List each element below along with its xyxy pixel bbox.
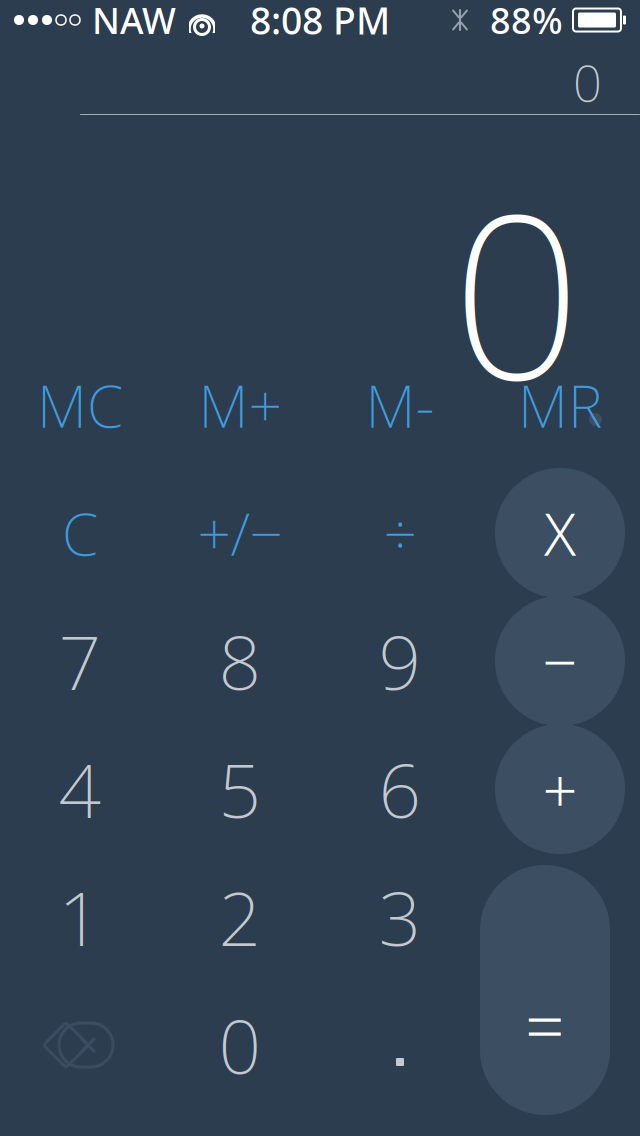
staticText: 6 <box>378 739 421 839</box>
button[interactable]: 2 <box>160 853 320 981</box>
staticText: 2 <box>218 867 261 967</box>
staticText: − <box>542 620 577 702</box>
button[interactable]: Minus <box>480 597 640 725</box>
staticText: 8 <box>218 611 261 711</box>
button[interactable]: MC <box>0 341 160 469</box>
staticText: ÷ <box>383 494 416 572</box>
staticText: = <box>525 979 565 1071</box>
button[interactable]: Decimal point <box>320 981 480 1109</box>
staticText: 5 <box>218 739 261 839</box>
button[interactable]: 0 <box>160 981 320 1109</box>
button[interactable]: 7 <box>0 597 160 725</box>
staticText: 3 <box>378 867 421 967</box>
staticText: C <box>62 494 98 572</box>
staticText: MR <box>518 366 602 444</box>
button[interactable]: MR <box>480 341 640 469</box>
button[interactable]: 6 <box>320 725 480 853</box>
staticText: 0 <box>218 995 261 1095</box>
staticText: +/− <box>197 494 282 572</box>
button[interactable]: 1 <box>0 853 160 981</box>
button[interactable]: 8 <box>160 597 320 725</box>
staticText: M- <box>365 366 434 444</box>
button[interactable]: 4 <box>0 725 160 853</box>
staticText: MC <box>37 366 123 444</box>
button[interactable]: Equals <box>480 865 610 1115</box>
staticText: 7 <box>58 611 101 711</box>
staticText: 8:08 PM <box>250 0 390 45</box>
button[interactable]: Multiply <box>480 469 640 597</box>
staticText: 0 <box>452 141 581 442</box>
button[interactable]: Backspace <box>0 981 160 1109</box>
button[interactable]: M- <box>320 341 480 469</box>
staticText: 9 <box>378 611 421 711</box>
button[interactable]: 9 <box>320 597 480 725</box>
staticText: + <box>542 748 577 830</box>
button[interactable]: Plus <box>480 725 640 853</box>
staticText: 88% <box>490 0 563 44</box>
button[interactable]: +/− <box>160 469 320 597</box>
button[interactable]: 3 <box>320 853 480 981</box>
button[interactable]: 5 <box>160 725 320 853</box>
staticText: M+ <box>198 366 281 444</box>
staticText: X <box>544 494 576 572</box>
staticText: NAW <box>92 0 176 44</box>
staticText: 0 <box>573 48 602 116</box>
button[interactable]: ÷ <box>320 469 480 597</box>
staticText: 1 <box>58 867 101 967</box>
button[interactable]: C <box>0 469 160 597</box>
button[interactable]: M+ <box>160 341 320 469</box>
staticText: 4 <box>58 739 101 839</box>
